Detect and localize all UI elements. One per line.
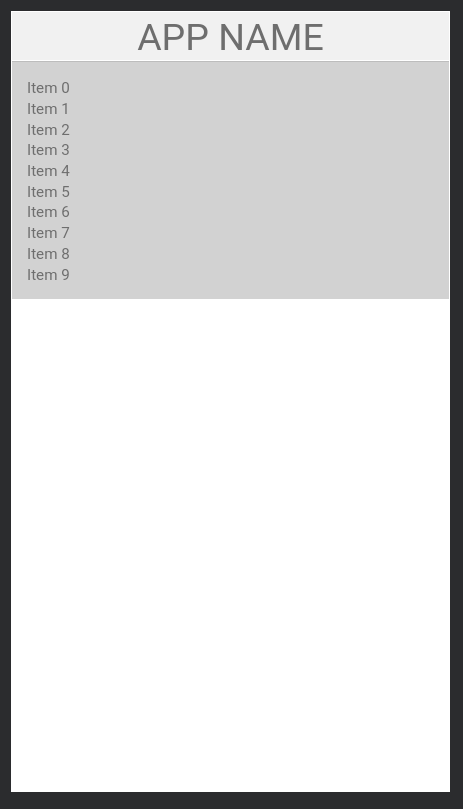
staticText: APP NAME <box>137 15 324 59</box>
staticText: Item 2 <box>27 121 70 139</box>
staticText: Item 9 <box>27 266 70 284</box>
button[interactable]: Item 0 <box>12 78 449 98</box>
button[interactable]: Item 7 <box>12 223 449 243</box>
button[interactable]: Item 8 <box>12 244 449 264</box>
staticText: Item 6 <box>27 203 70 221</box>
staticText: Item 1 <box>27 100 70 118</box>
button[interactable]: Item 5 <box>12 182 449 202</box>
staticText: Item 4 <box>27 162 70 180</box>
staticText: Item 3 <box>27 141 70 159</box>
button[interactable]: Item 2 <box>12 120 449 140</box>
button[interactable]: Item 1 <box>12 99 449 119</box>
button[interactable]: Item 9 <box>12 265 449 285</box>
staticText: Item 5 <box>27 183 70 201</box>
button[interactable]: Item 3 <box>12 140 449 160</box>
staticText: Item 7 <box>27 224 70 242</box>
button[interactable]: Item 4 <box>12 161 449 181</box>
button[interactable]: APP NAME <box>12 12 449 60</box>
staticText: Item 8 <box>27 245 70 263</box>
button[interactable]: Item 6 <box>12 202 449 222</box>
staticText: Item 0 <box>27 79 70 97</box>
